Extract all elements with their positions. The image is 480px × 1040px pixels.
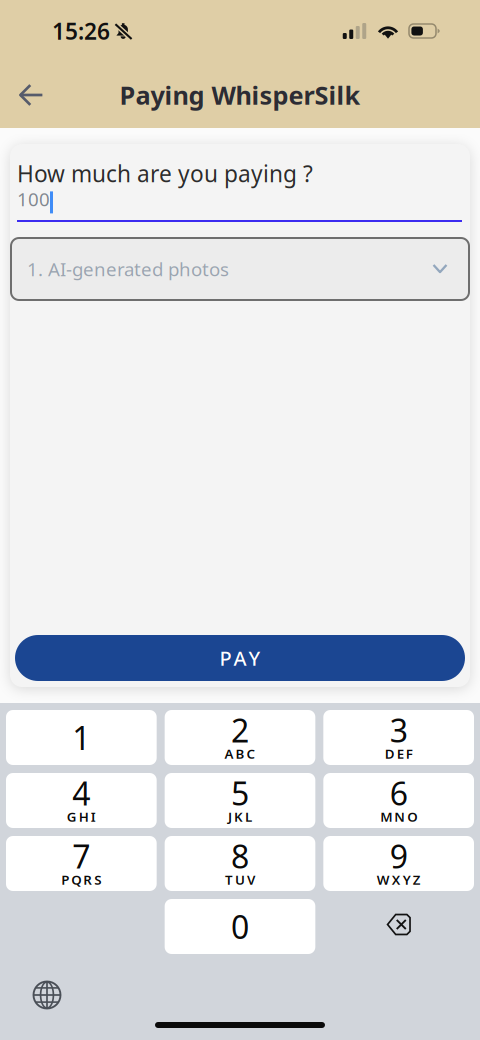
staticText: 1. AI-generated photos <box>27 257 229 281</box>
staticText: 6 <box>390 772 408 814</box>
staticText: 4 <box>72 772 90 814</box>
button[interactable]: Delete <box>323 899 474 954</box>
staticText: 9 <box>390 835 408 877</box>
button[interactable]: 1 <box>6 710 157 765</box>
staticText: 0 <box>231 905 249 948</box>
button[interactable]: 0 <box>165 899 315 954</box>
button[interactable]: P A Y <box>15 635 465 681</box>
staticText: M N O <box>380 808 417 825</box>
staticText: P Q R S <box>61 871 101 888</box>
staticText: A B C <box>224 745 255 762</box>
staticText: P A Y <box>219 645 260 671</box>
staticText: J K L <box>228 808 252 825</box>
button[interactable]: 8 <box>165 836 315 891</box>
button[interactable]: 4 <box>6 773 157 828</box>
staticText: G H I <box>67 808 96 825</box>
button[interactable]: 9 <box>323 836 474 891</box>
staticText: 15:26 <box>52 16 110 46</box>
staticText: T U V <box>225 871 255 888</box>
staticText: Paying WhisperSilk <box>119 78 360 112</box>
staticText: 100 <box>17 187 50 211</box>
staticText: D E F <box>385 745 413 762</box>
button[interactable]: 7 <box>6 836 157 891</box>
staticText: 2 <box>231 709 249 751</box>
staticText: 1 <box>72 716 90 759</box>
staticText: 7 <box>72 835 90 877</box>
staticText: W X Y Z <box>377 871 421 888</box>
button[interactable]: Back <box>7 71 55 119</box>
button[interactable]: 3 <box>323 710 474 765</box>
button[interactable]: 5 <box>165 773 315 828</box>
button[interactable]: 1. AI-generated photos <box>11 238 469 300</box>
button[interactable]: 2 <box>165 710 315 765</box>
button[interactable]: Switch keyboard <box>24 972 70 1018</box>
staticText: 3 <box>390 709 408 751</box>
button[interactable]: 6 <box>323 773 474 828</box>
staticText: How much are you paying ? <box>17 158 313 188</box>
staticText: 5 <box>231 772 249 814</box>
staticText: 8 <box>231 835 249 877</box>
